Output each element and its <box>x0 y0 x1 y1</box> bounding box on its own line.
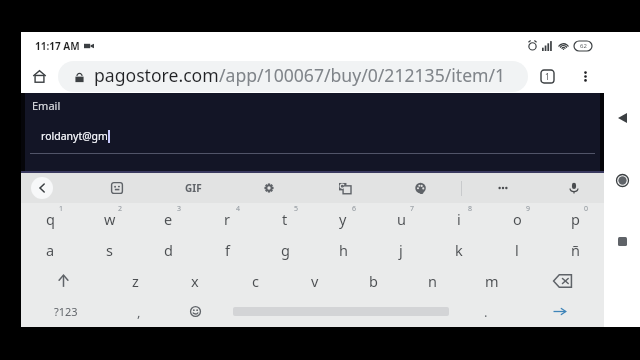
staticText: 4 <box>236 204 241 214</box>
staticText: i <box>457 209 461 229</box>
button[interactable]: Enter <box>514 296 604 327</box>
button[interactable]: Home <box>21 59 58 93</box>
staticText: t <box>282 209 288 229</box>
button[interactable]: h <box>314 234 372 265</box>
staticText: v <box>311 271 319 291</box>
button[interactable]: Voice input <box>544 173 604 203</box>
button[interactable]: j <box>372 234 430 265</box>
staticText: /app/100067/buy/0/212135/item/1 <box>219 63 506 87</box>
button[interactable]: p <box>546 203 604 234</box>
staticText: 9 <box>526 204 531 214</box>
staticText: , <box>137 303 141 321</box>
button[interactable]: a <box>21 234 80 265</box>
button[interactable]: , <box>111 296 167 327</box>
staticText: 62 <box>580 42 587 50</box>
button[interactable]: r <box>198 203 256 234</box>
button[interactable]: m <box>462 265 521 296</box>
staticText: 1 <box>59 204 64 214</box>
button[interactable]: Emoji <box>167 296 223 327</box>
button[interactable]: f <box>198 234 256 265</box>
staticText: q <box>46 209 55 229</box>
staticText: l <box>515 240 519 260</box>
staticText: m <box>485 271 499 291</box>
staticText: roldanyt@gm <box>41 129 108 143</box>
button[interactable]: z <box>105 265 165 296</box>
button[interactable]: pagostore.com <box>58 61 528 92</box>
staticText: c <box>252 271 259 291</box>
staticText: a <box>46 240 55 260</box>
staticText: x <box>191 271 199 291</box>
staticText: b <box>369 271 378 291</box>
staticText: 5 <box>294 204 299 214</box>
button[interactable]: n <box>403 265 462 296</box>
button[interactable]: i <box>430 203 488 234</box>
staticText: y <box>339 209 347 229</box>
button[interactable]: GIF <box>155 173 231 203</box>
staticText: f <box>225 240 230 260</box>
staticText: 2 <box>118 204 123 214</box>
button[interactable]: Tabs <box>528 59 566 93</box>
button[interactable]: b <box>344 265 403 296</box>
button[interactable]: Settings <box>231 173 307 203</box>
button[interactable]: s <box>80 234 139 265</box>
staticText: 11:17 AM <box>35 39 80 53</box>
button[interactable]: d <box>139 234 198 265</box>
staticText: GIF <box>185 181 202 195</box>
staticText: h <box>339 240 348 260</box>
staticText: Email <box>32 98 61 113</box>
button[interactable]: Back <box>607 103 637 133</box>
button[interactable]: Space <box>223 296 458 327</box>
button[interactable]: ?123 <box>21 296 111 327</box>
staticText: ?123 <box>54 304 78 319</box>
button[interactable]: x <box>165 265 225 296</box>
button[interactable]: o <box>488 203 546 234</box>
button[interactable]: c <box>225 265 285 296</box>
button[interactable]: k <box>430 234 488 265</box>
button[interactable]: y <box>314 203 372 234</box>
button[interactable]: Home <box>607 165 637 195</box>
staticText: z <box>132 271 139 291</box>
staticText: u <box>397 209 406 229</box>
button[interactable]: u <box>372 203 430 234</box>
staticText: 1 <box>545 71 550 82</box>
button[interactable]: g <box>256 234 314 265</box>
button[interactable]: Translate <box>307 173 383 203</box>
button[interactable]: More <box>462 173 544 203</box>
staticText: s <box>106 240 113 260</box>
button[interactable]: . <box>458 296 514 327</box>
staticText: 3 <box>177 204 182 214</box>
button[interactable]: Sticker <box>79 173 155 203</box>
button[interactable]: Themes <box>383 173 459 203</box>
staticText: . <box>484 303 488 321</box>
button[interactable]: Shift <box>21 265 105 296</box>
button[interactable]: v <box>285 265 344 296</box>
button[interactable]: e <box>139 203 198 234</box>
staticText: n <box>428 271 437 291</box>
button[interactable]: More options <box>566 59 604 93</box>
button[interactable]: w <box>80 203 139 234</box>
staticText: o <box>513 209 522 229</box>
staticText: pagostore.com <box>94 63 219 87</box>
staticText: k <box>455 240 463 260</box>
button[interactable]: Back <box>21 173 79 203</box>
staticText: 8 <box>468 204 473 214</box>
staticText: r <box>224 209 230 229</box>
button[interactable]: l <box>488 234 546 265</box>
staticText: p <box>571 209 580 229</box>
button[interactable]: Recents <box>607 226 637 256</box>
button[interactable]: t <box>256 203 314 234</box>
button[interactable]: q <box>21 203 80 234</box>
staticText: ñ <box>571 240 580 260</box>
staticText: d <box>164 240 173 260</box>
staticText: w <box>104 209 116 229</box>
staticText: 6 <box>352 204 357 214</box>
staticText: g <box>281 240 290 260</box>
button[interactable]: Backspace <box>521 265 604 296</box>
staticText: j <box>399 240 403 260</box>
staticText: 0 <box>584 204 589 214</box>
staticText: 7 <box>410 204 415 214</box>
button[interactable]: ñ <box>546 234 604 265</box>
staticText: e <box>164 209 173 229</box>
